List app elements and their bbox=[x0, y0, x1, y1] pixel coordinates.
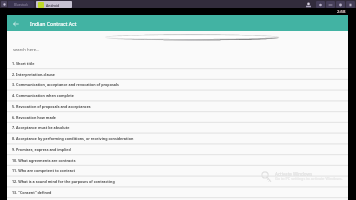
staticText: Bluestack bbox=[14, 3, 28, 7]
button[interactable]: 11. Who are competent to contract bbox=[7, 165, 348, 176]
button[interactable]: Window control bbox=[326, 1, 335, 8]
button[interactable]: 13. "Consent" defined bbox=[7, 187, 348, 198]
staticText: Indian Contract Act bbox=[30, 20, 77, 27]
staticText: 7. Acceptance must be absolute bbox=[12, 125, 70, 130]
staticText: 4. Communication when complete bbox=[12, 93, 74, 98]
button[interactable]: 4. Communication when complete bbox=[7, 90, 348, 101]
staticText: search here... bbox=[13, 47, 40, 53]
staticText: 8. Acceptance by performing conditions, … bbox=[12, 136, 134, 141]
button[interactable]: 10. What agreements are contracts bbox=[7, 155, 348, 166]
staticText: 2:58 bbox=[337, 9, 346, 15]
button[interactable]: Bluestack bbox=[8, 1, 34, 8]
staticText: Android bbox=[46, 3, 60, 7]
staticText: 3. Communication, acceptance and revocat… bbox=[12, 82, 119, 87]
button[interactable]: 5. Revocation of proposals and acceptanc… bbox=[7, 101, 348, 112]
button[interactable]: 1. Short title bbox=[7, 58, 348, 69]
button[interactable]: 6. Revocation how made bbox=[7, 112, 348, 123]
staticText: Go to PC settings to activate Windows. bbox=[275, 176, 343, 181]
button[interactable]: Window control bbox=[336, 1, 345, 8]
button[interactable]: 2. Interpretation-clause bbox=[7, 69, 348, 80]
button[interactable]: 8. Acceptance by performing conditions, … bbox=[7, 133, 348, 144]
staticText: 12. What is a sound mind for the purpose… bbox=[12, 179, 115, 184]
button[interactable]: 9. Promises, express and implied bbox=[7, 144, 348, 155]
button[interactable]: Android bbox=[36, 1, 72, 8]
staticText: 11. Who are competent to contract bbox=[12, 168, 76, 173]
button[interactable]: Window control bbox=[346, 1, 355, 8]
button[interactable]: search here... bbox=[7, 31, 348, 58]
button[interactable]: Window control bbox=[316, 1, 325, 8]
staticText: 10. What agreements are contracts bbox=[12, 158, 76, 163]
button[interactable]: 3. Communication, acceptance and revocat… bbox=[7, 79, 348, 90]
button[interactable]: Back bbox=[10, 18, 21, 29]
staticText: 13. "Consent" defined bbox=[12, 190, 52, 195]
button[interactable]: Multi instance bbox=[304, 1, 313, 8]
staticText: 2. Interpretation-clause bbox=[12, 72, 55, 77]
button[interactable]: Menu bbox=[1, 1, 7, 7]
staticText: 1. Short title bbox=[12, 61, 35, 66]
button[interactable]: 12. What is a sound mind for the purpose… bbox=[7, 176, 348, 187]
staticText: 9. Promises, express and implied bbox=[12, 147, 71, 152]
staticText: 5. Revocation of proposals and acceptanc… bbox=[12, 104, 91, 109]
staticText: 6. Revocation how made bbox=[12, 115, 57, 120]
staticText: Activate Windows bbox=[275, 171, 313, 177]
button[interactable]: 7. Acceptance must be absolute bbox=[7, 122, 348, 133]
